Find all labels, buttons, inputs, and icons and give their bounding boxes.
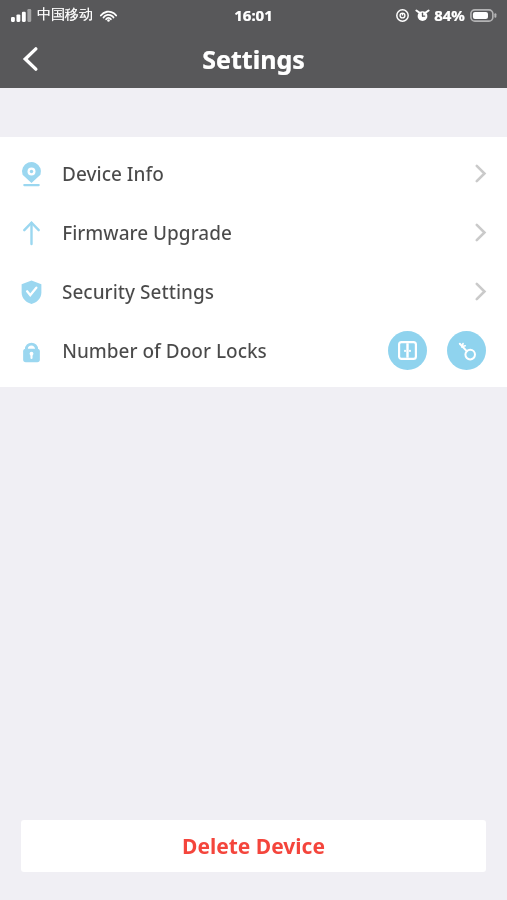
button[interactable]: Double door lock bbox=[388, 331, 427, 370]
staticText: Device Info bbox=[62, 161, 164, 187]
staticText: Security Settings bbox=[62, 279, 214, 305]
button[interactable]: Back bbox=[0, 30, 62, 88]
button[interactable]: Firmware Upgrade bbox=[0, 203, 507, 262]
button[interactable]: Device Info bbox=[0, 144, 507, 203]
staticText: 84% bbox=[434, 5, 465, 25]
button[interactable]: Single key lock bbox=[447, 331, 486, 370]
staticText: Settings bbox=[202, 42, 305, 76]
staticText: Firmware Upgrade bbox=[62, 220, 232, 246]
button[interactable]: Delete Device bbox=[21, 820, 486, 872]
button[interactable]: Security Settings bbox=[0, 262, 507, 321]
staticText: Delete Device bbox=[182, 832, 325, 861]
staticText: Number of Door Locks bbox=[62, 338, 267, 364]
staticText: 中国移动 bbox=[37, 6, 93, 24]
staticText: 16:01 bbox=[234, 5, 273, 25]
